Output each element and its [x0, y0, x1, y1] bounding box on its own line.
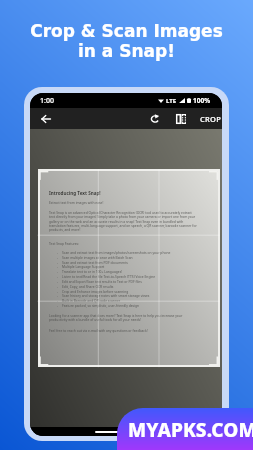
staticText: -: [57, 260, 59, 264]
staticText: CROP: [200, 114, 222, 124]
staticText: -: [57, 274, 59, 278]
staticText: Feature packed, so simplistic, user-frie…: [62, 303, 140, 307]
button[interactable]: Compare: [173, 111, 189, 127]
staticText: -: [57, 289, 59, 293]
staticText: -: [57, 269, 59, 273]
staticText: 1:00: [40, 96, 54, 106]
staticText: Scan history and storage notes with smar…: [62, 293, 150, 297]
button[interactable]: Rotate: [147, 111, 163, 127]
staticText: Feel free to reach out via e-mail with a…: [49, 328, 148, 332]
staticText: Crop and Enhance images before scanning: [62, 289, 129, 293]
staticText: -: [57, 303, 59, 307]
staticText: Translate text to or in 100+ Languages!: [62, 269, 123, 273]
staticText: Edit and Export/Scan text results to Tex…: [62, 279, 142, 283]
staticText: productivity with a bundle of useful too…: [49, 317, 141, 321]
staticText: 100%: [193, 96, 211, 105]
staticText: products, and more!: [49, 227, 81, 231]
staticText: Listen to text/Read the file Text-to-Spe…: [62, 274, 156, 278]
staticText: Introducing Text Snap!: [49, 190, 101, 196]
staticText: Text Snap is an advanced Optical Charact…: [49, 210, 192, 214]
staticText: text directly from your images! Simply t…: [49, 214, 196, 218]
staticText: Scan and extract text from images/photos…: [62, 250, 171, 254]
staticText: -: [57, 264, 59, 268]
staticText: translation features, multi-language sup…: [49, 223, 197, 227]
button[interactable]: CROP: [196, 110, 222, 128]
staticText: Crop & Scan Images in a Snap!: [0, 21, 253, 61]
staticText: -: [57, 284, 59, 288]
staticText: Text Snap Features:: [49, 241, 80, 245]
staticText: -: [57, 279, 59, 283]
button[interactable]: Back: [38, 111, 54, 127]
staticText: -: [57, 298, 59, 302]
staticText: LTE: [166, 97, 177, 105]
staticText: -: [57, 255, 59, 259]
staticText: Extract text from images with ease!: [49, 200, 104, 204]
staticText: Edit, Copy, and Share OCR results: [62, 284, 114, 288]
staticText: Built in Barcode and QR code scanner: [62, 298, 121, 302]
staticText: Multiple Language Support: [62, 264, 105, 268]
staticText: Scan multiple images at once with Batch …: [62, 255, 133, 259]
staticText: Looking for a scanner app that does more…: [49, 313, 183, 317]
staticText: -: [57, 250, 59, 254]
staticText: gallery or on the web and an accurate re…: [49, 219, 184, 223]
staticText: Scan and extract text from PDF documents: [62, 260, 128, 264]
staticText: MYAPKS.COM: [128, 417, 253, 443]
staticText: -: [57, 293, 59, 297]
